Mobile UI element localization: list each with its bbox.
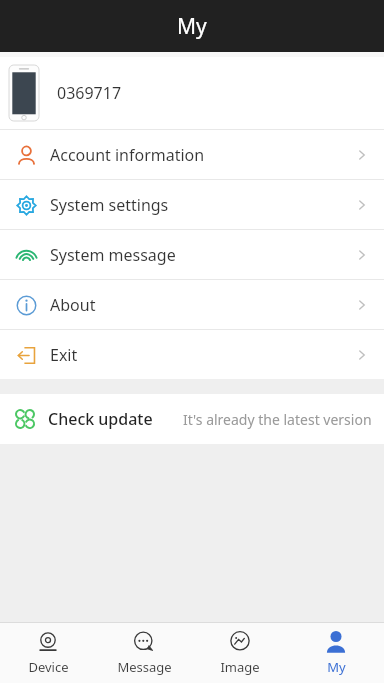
staticText: My xyxy=(177,12,207,41)
button[interactable]: 0369717 xyxy=(0,57,384,129)
other: Image xyxy=(228,630,252,654)
button[interactable]: Device xyxy=(0,623,96,683)
staticText: Image xyxy=(220,658,260,676)
button[interactable]: Exit xyxy=(0,330,384,379)
button[interactable]: Account information xyxy=(0,130,384,179)
other: My xyxy=(324,630,348,654)
staticText: System settings xyxy=(50,194,169,216)
staticText: Message xyxy=(117,658,172,676)
staticText: About xyxy=(50,294,96,316)
staticText: Device xyxy=(28,658,69,676)
button[interactable]: Message xyxy=(96,623,192,683)
staticText: My xyxy=(327,658,346,676)
button[interactable]: About xyxy=(0,280,384,329)
staticText: Check update xyxy=(48,408,153,430)
staticText: System message xyxy=(50,244,176,266)
staticText: Account information xyxy=(50,144,205,166)
other: Device xyxy=(36,630,60,654)
staticText: 0369717 xyxy=(57,82,122,104)
button[interactable]: Check update xyxy=(0,394,384,444)
button[interactable]: Image xyxy=(192,623,288,683)
other: Message xyxy=(132,630,156,654)
staticText: Exit xyxy=(50,344,78,366)
button[interactable]: My xyxy=(288,623,384,683)
button[interactable]: System settings xyxy=(0,180,384,229)
button[interactable]: System message xyxy=(0,230,384,279)
staticText: It's already the latest version xyxy=(183,410,372,429)
